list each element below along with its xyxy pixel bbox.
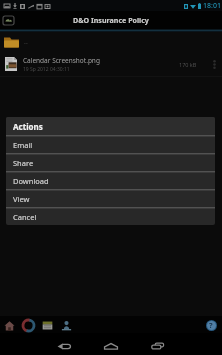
button[interactable]: Home bbox=[103, 336, 119, 352]
staticText: Calendar Screenshot.png bbox=[23, 56, 100, 65]
button[interactable]: Sync bbox=[22, 319, 34, 331]
button[interactable]: Cancel bbox=[6, 209, 215, 225]
button[interactable]: Notes bbox=[41, 319, 53, 331]
staticText: Cancel bbox=[13, 212, 37, 222]
button[interactable]: Recents bbox=[150, 336, 166, 352]
staticText: ? bbox=[209, 320, 213, 330]
staticText: 19 Sp 2012 04:30:11 bbox=[23, 66, 70, 73]
button[interactable]: Home bbox=[3, 319, 15, 331]
staticText: 18:01 bbox=[203, 1, 221, 11]
button[interactable]: More options bbox=[209, 59, 219, 69]
button[interactable]: Share bbox=[6, 155, 215, 171]
button[interactable]: Calendar Screenshot.png bbox=[0, 52, 222, 76]
staticText: View bbox=[13, 194, 30, 204]
staticText: Download bbox=[13, 176, 49, 186]
staticText: D&O Insurance Policy bbox=[73, 15, 149, 25]
button[interactable]: Profile bbox=[60, 319, 72, 331]
staticText: .. bbox=[24, 37, 28, 47]
button[interactable]: Help bbox=[205, 319, 217, 331]
staticText: 170 kB bbox=[179, 61, 197, 68]
button[interactable]: App icon bbox=[2, 15, 14, 25]
staticText: Email bbox=[13, 140, 33, 150]
button[interactable]: Back bbox=[56, 336, 72, 352]
staticText: Actions bbox=[13, 121, 43, 132]
button[interactable]: Download bbox=[6, 173, 215, 189]
button[interactable]: .. bbox=[0, 32, 222, 52]
staticText: Share bbox=[13, 158, 34, 168]
button[interactable]: View bbox=[6, 191, 215, 207]
button[interactable]: Email bbox=[6, 137, 215, 153]
